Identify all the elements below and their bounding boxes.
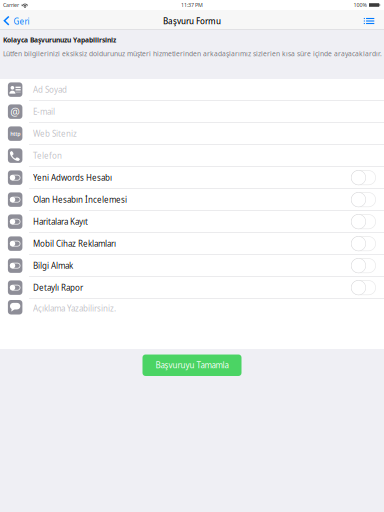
staticText: Yeni Adwords Hesabı — [33, 172, 112, 183]
button[interactable]: Liste — [358, 10, 384, 28]
staticText: Lütfen bilgilerinizi eksiksiz doldurunuz… — [3, 49, 382, 58]
staticText: Haritalara Kayıt — [33, 216, 88, 227]
button[interactable]: Yeni Adwords Hesabı — [0, 167, 384, 189]
button[interactable]: Detaylı Rapor — [0, 277, 384, 299]
staticText: Carrier — [3, 1, 19, 9]
button[interactable]: Ad Soyad — [0, 79, 384, 101]
staticText: 100% — [353, 1, 366, 9]
button[interactable]: http — [0, 123, 384, 145]
staticText: Ad Soyad — [33, 84, 67, 95]
staticText: E-mail — [33, 106, 55, 117]
staticText: Bilgi Almak — [33, 260, 73, 271]
button[interactable]: Olan Hesabın İncelemesi — [0, 189, 384, 211]
staticText: Olan Hesabın İncelemesi — [33, 194, 127, 205]
staticText: Web Siteniz — [33, 128, 77, 139]
staticText: Detaylı Rapor — [33, 282, 83, 293]
button[interactable]: Başvuruyu Tamamla — [142, 354, 241, 376]
staticText: 11:37 PM — [181, 1, 203, 9]
staticText: Mobil Cihaz Reklamları — [33, 238, 116, 249]
button[interactable]: Mobil Cihaz Reklamları — [0, 233, 384, 255]
button[interactable]: Geri — [0, 9, 35, 30]
staticText: Başvuru Formu — [163, 16, 221, 26]
staticText: Geri — [13, 16, 29, 27]
staticText: Açıklama Yazabilirsiniz. — [33, 303, 116, 314]
staticText: @ — [10, 105, 20, 119]
staticText: http — [10, 130, 20, 137]
button[interactable]: @ — [0, 101, 384, 123]
button[interactable]: Açıklama Yazabilirsiniz. — [0, 299, 384, 349]
button[interactable]: Bilgi Almak — [0, 255, 384, 277]
button[interactable]: Haritalara Kayıt — [0, 211, 384, 233]
staticText: Telefon — [33, 150, 62, 161]
button[interactable]: Telefon — [0, 145, 384, 167]
staticText: Kolayca Başvurunuzu Yapabilirsiniz — [3, 35, 116, 44]
staticText: Başvuruyu Tamamla — [155, 360, 228, 370]
